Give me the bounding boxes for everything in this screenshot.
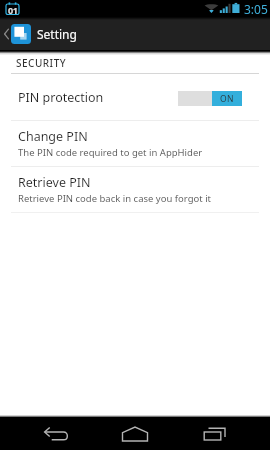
- staticText: The PIN code required to get in AppHider: [18, 146, 203, 159]
- button[interactable]: Navigate up: [0, 17, 270, 50]
- staticText: SECURITY: [16, 56, 67, 70]
- staticText: Setting: [37, 26, 77, 42]
- button[interactable]: Recent apps: [189, 417, 241, 450]
- staticText: Retrieve PIN code back in case you forgo…: [18, 192, 212, 205]
- staticText: ON: [220, 93, 234, 105]
- staticText: 3:05: [244, 1, 268, 17]
- staticText: Change PIN: [18, 128, 88, 145]
- staticText: Retrieve PIN: [18, 174, 91, 191]
- staticText: PIN protection: [18, 89, 104, 106]
- button[interactable]: PIN protection: [0, 74, 270, 120]
- button[interactable]: Back: [30, 417, 82, 450]
- staticText: 01: [8, 4, 18, 16]
- button[interactable]: Change PIN: [0, 121, 270, 166]
- button[interactable]: Home: [109, 417, 161, 450]
- button[interactable]: Retrieve PIN: [0, 167, 270, 212]
